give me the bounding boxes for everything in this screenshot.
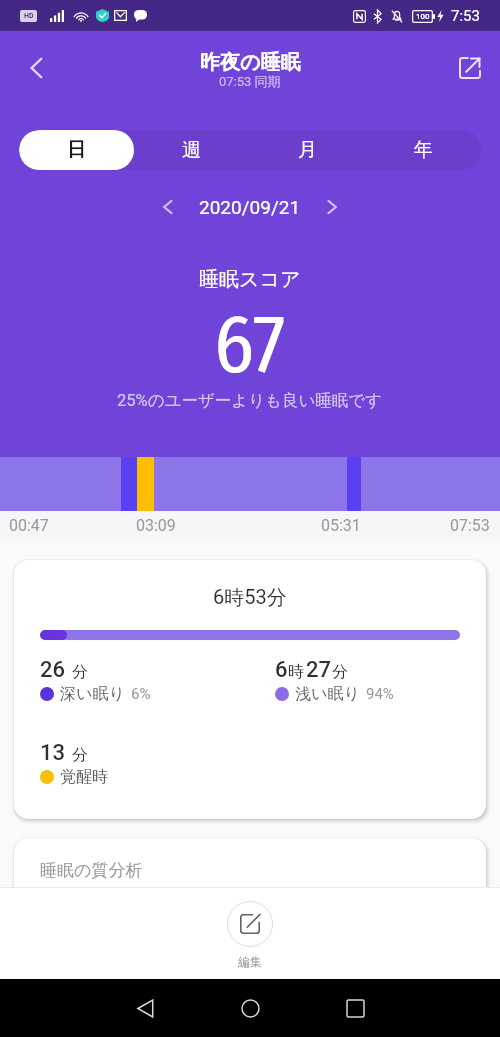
button[interactable]: 睡眠の質分析 xyxy=(14,838,486,887)
staticText: 67 xyxy=(214,296,286,393)
staticText: 月 xyxy=(298,138,317,162)
button[interactable]: Share xyxy=(449,47,491,89)
button[interactable]: Back xyxy=(14,46,58,90)
staticText: 7:53 xyxy=(451,7,480,25)
staticText: 浅い眠り xyxy=(295,684,360,704)
button[interactable]: Back xyxy=(113,979,177,1037)
staticText: 分 xyxy=(332,662,348,682)
staticText: 94% xyxy=(366,685,394,703)
staticText: 05:31 xyxy=(321,516,361,535)
staticText: 睡眠の質分析 xyxy=(40,860,143,881)
staticText: 2020/09/21 xyxy=(199,196,301,218)
staticText: 編集 xyxy=(238,954,262,969)
staticText: 覚醒時 xyxy=(60,767,108,787)
staticText: 6時53分 xyxy=(213,585,287,610)
staticText: 分 xyxy=(72,662,88,682)
button[interactable]: 日 xyxy=(19,130,134,170)
button[interactable]: 年 xyxy=(365,130,481,170)
button[interactable]: Home xyxy=(218,979,282,1037)
button[interactable]: 月 xyxy=(249,130,365,170)
staticText: 25%のユーザーよりも良い睡眠です xyxy=(117,390,383,411)
staticText: 26 xyxy=(40,657,66,683)
staticText: 6% xyxy=(131,685,151,703)
button[interactable]: Recents xyxy=(323,979,387,1037)
staticText: 100 xyxy=(416,12,430,21)
button[interactable]: Next day xyxy=(313,188,351,226)
staticText: 00:47 xyxy=(9,516,49,535)
button[interactable]: 週 xyxy=(134,130,249,170)
staticText: 年 xyxy=(414,138,433,162)
button[interactable]: 6時53分 xyxy=(14,560,486,819)
staticText: 27 xyxy=(306,657,332,683)
staticText: 分 xyxy=(72,745,88,765)
button[interactable]: 編集 xyxy=(0,888,500,979)
button[interactable]: Previous day xyxy=(149,188,187,226)
staticText: 深い眠り xyxy=(60,684,125,704)
staticText: 03:09 xyxy=(136,516,176,535)
staticText: 07:53 同期 xyxy=(219,73,281,89)
staticText: 6 xyxy=(275,657,288,683)
staticText: HD xyxy=(24,12,34,20)
staticText: 昨夜の睡眠 xyxy=(200,50,301,75)
staticText: 週 xyxy=(182,138,201,162)
staticText: 07:53 xyxy=(450,516,490,535)
staticText: 睡眠スコア xyxy=(199,267,301,292)
staticText: 13 xyxy=(40,740,66,766)
staticText: 時 xyxy=(288,662,304,682)
staticText: 日 xyxy=(67,138,86,162)
